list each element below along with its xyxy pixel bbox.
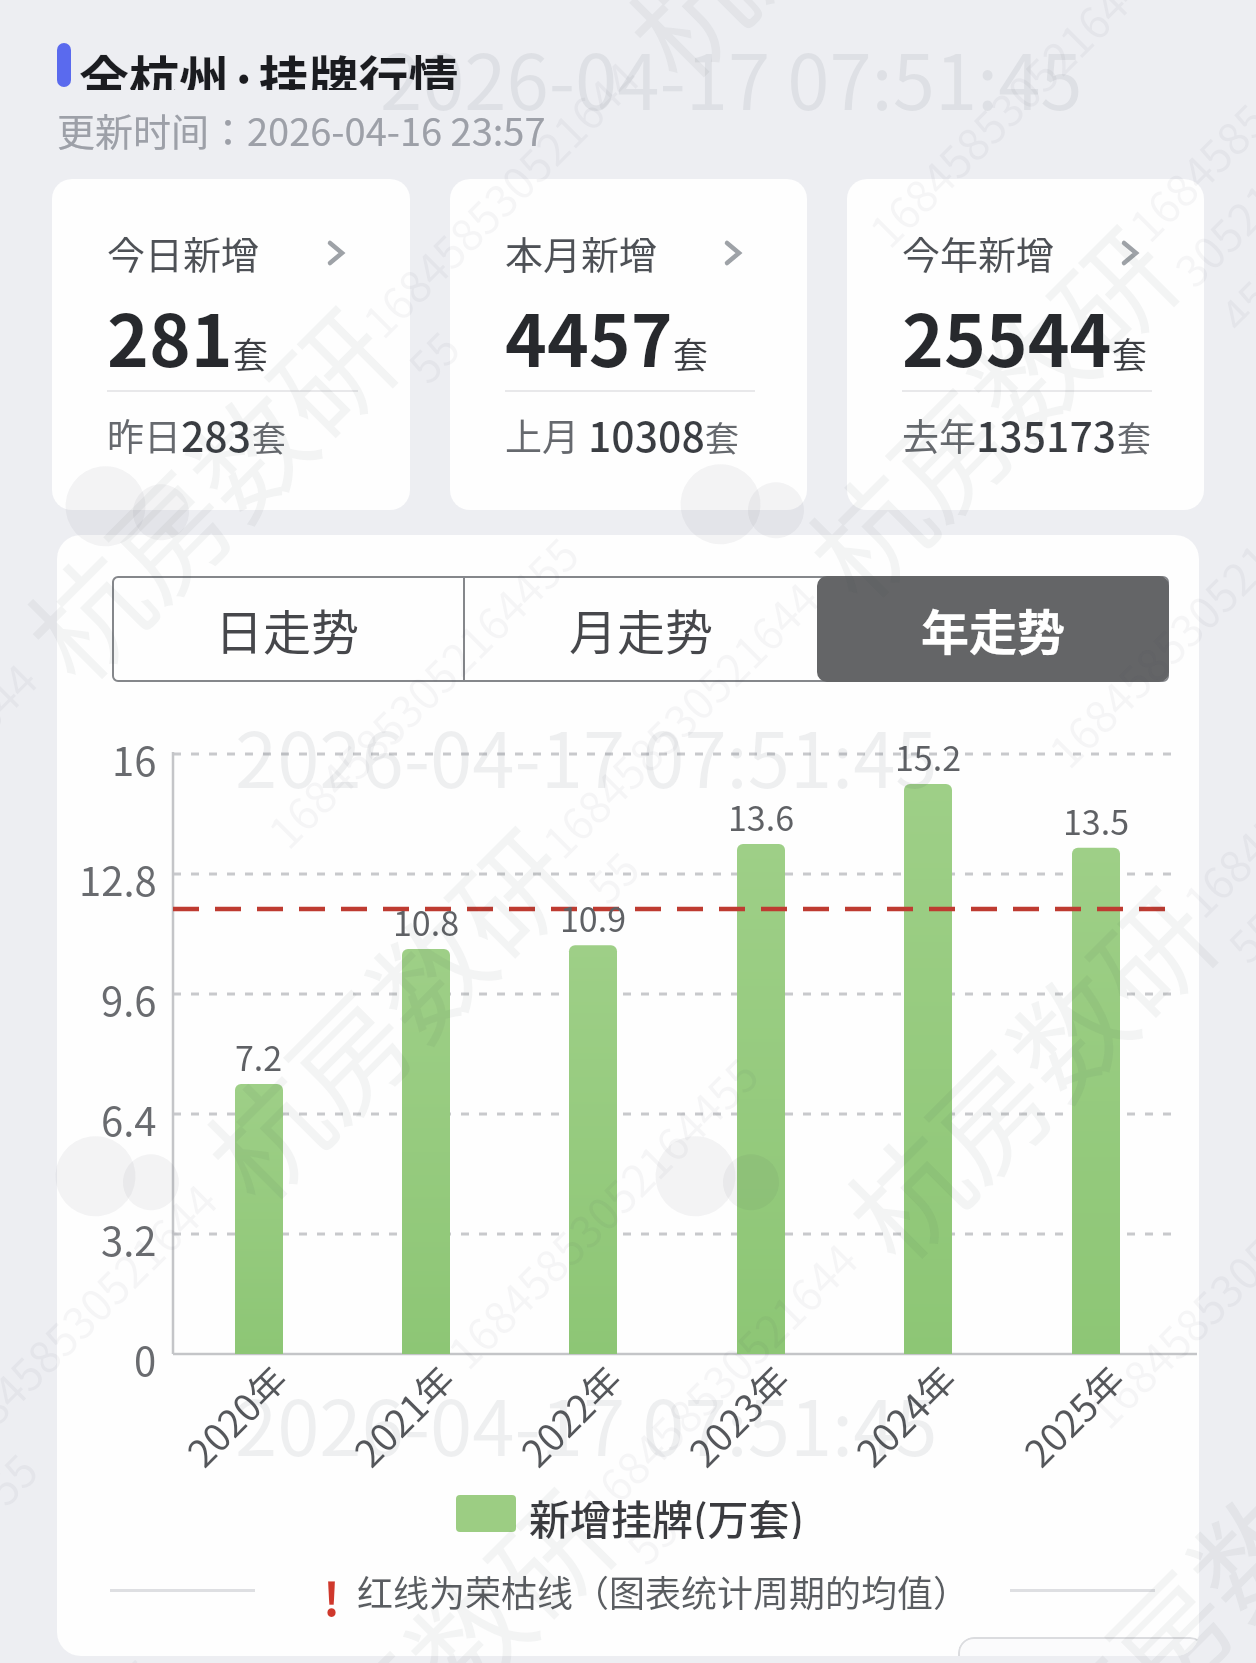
staticText: 2026-04-17 07:51:45 bbox=[235, 700, 938, 810]
staticText: 10308 bbox=[588, 404, 705, 463]
staticText: 今日新增 bbox=[107, 225, 260, 280]
staticText: 16845853052164455 bbox=[252, 522, 592, 861]
staticText: 10.8 bbox=[393, 897, 460, 937]
staticText: 红线为荣枯线（图表统计周期的均值） bbox=[357, 1565, 970, 1617]
staticText: 13.6 bbox=[728, 792, 795, 832]
staticText: 日走势 bbox=[215, 594, 360, 664]
staticText: 套 bbox=[673, 327, 709, 378]
staticText: 10.9 bbox=[560, 893, 627, 933]
button[interactable]: 今年新增 bbox=[847, 179, 1204, 510]
staticText: 套 bbox=[1117, 412, 1151, 461]
staticText: 16845853052164455 bbox=[566, 1211, 932, 1577]
staticText: 16845853052164455 bbox=[0, 1643, 170, 1663]
staticText: 2025年 bbox=[1010, 1352, 1128, 1470]
staticText: 套 bbox=[1112, 327, 1148, 378]
button[interactable]: 今日新增 bbox=[52, 179, 410, 510]
staticText: 9.6 bbox=[101, 970, 157, 1018]
staticText: 2021年 bbox=[340, 1352, 458, 1470]
button[interactable] bbox=[958, 1637, 1199, 1656]
staticText: 2026-04-17 07:51:45 bbox=[235, 1368, 938, 1478]
staticText: 杭房数研 bbox=[0, 269, 429, 713]
staticText: 12.8 bbox=[79, 850, 157, 898]
staticText: 16845853052164455 bbox=[1167, 609, 1256, 976]
button[interactable]: 本月新增 bbox=[450, 179, 807, 510]
staticText: 16845853052164455 bbox=[432, 1042, 771, 1381]
staticText: 3.2 bbox=[101, 1210, 157, 1258]
staticText: 16845853052164455 bbox=[527, 550, 893, 916]
staticText: 套 bbox=[233, 327, 269, 378]
staticText: 15.2 bbox=[895, 732, 962, 772]
staticText: 上月 bbox=[505, 408, 588, 462]
staticText: 昨日 bbox=[107, 408, 181, 462]
staticText: 套 bbox=[705, 412, 739, 461]
staticText: 281 bbox=[107, 285, 233, 388]
staticText: 杭房数研 bbox=[986, 1369, 1256, 1663]
staticText: 本月新增 bbox=[505, 225, 658, 280]
staticText: 更新时间：2026-04-16 23:57 bbox=[57, 102, 546, 152]
button[interactable]: 月走势 bbox=[465, 576, 817, 682]
staticText: 2024年 bbox=[842, 1352, 960, 1470]
staticText: 16845853052164455 bbox=[1033, 441, 1256, 780]
staticText: 杭房数研 bbox=[165, 790, 609, 1234]
staticText: 0 bbox=[134, 1330, 157, 1378]
staticText: 2022年 bbox=[507, 1352, 625, 1470]
staticText: 2020年 bbox=[173, 1352, 291, 1470]
staticText: 今年新增 bbox=[902, 225, 1055, 280]
staticText: 杭房数研 bbox=[204, 1451, 648, 1663]
staticText: 16845853052164455 bbox=[1253, 1621, 1256, 1663]
staticText: 全杭州·挂牌行情 bbox=[79, 40, 459, 90]
staticText: 16845853052164455 bbox=[1114, 77, 1256, 329]
staticText: 杭房数研 bbox=[767, 188, 1211, 632]
staticText: 13.5 bbox=[1063, 796, 1130, 836]
staticText: 年走势 bbox=[921, 594, 1066, 664]
staticText: 16845853052164455 bbox=[0, 1152, 291, 1518]
staticText: 杭房数研 bbox=[805, 849, 1250, 1293]
staticText: 16845853052164455 bbox=[347, 29, 714, 396]
staticText: 16845853052164455 bbox=[1073, 1101, 1256, 1441]
staticText: ! bbox=[323, 1563, 341, 1619]
staticText: 25544 bbox=[902, 285, 1112, 388]
staticText: 16 bbox=[112, 730, 157, 778]
staticText: 7.2 bbox=[235, 1032, 283, 1072]
staticText: 16845853052164455 bbox=[854, 0, 1193, 260]
staticText: 新增挂牌(万套) bbox=[529, 1487, 805, 1539]
staticText: 2026-04-17 07:51:45 bbox=[380, 22, 1083, 132]
staticText: 杭房数研 bbox=[587, 0, 1031, 111]
staticText: 2023年 bbox=[675, 1352, 793, 1470]
staticText: 4457 bbox=[505, 285, 673, 388]
staticText: 月走势 bbox=[569, 594, 714, 664]
button[interactable]: 年走势 bbox=[817, 576, 1169, 682]
staticText: 283 bbox=[181, 404, 252, 463]
staticText: 16845853052164455 bbox=[0, 631, 112, 997]
staticText: 去年 bbox=[902, 408, 976, 462]
staticText: 套 bbox=[252, 412, 286, 461]
staticText: 135173 bbox=[976, 404, 1117, 463]
button[interactable]: 日走势 bbox=[112, 576, 463, 682]
staticText: 6.4 bbox=[101, 1090, 157, 1138]
